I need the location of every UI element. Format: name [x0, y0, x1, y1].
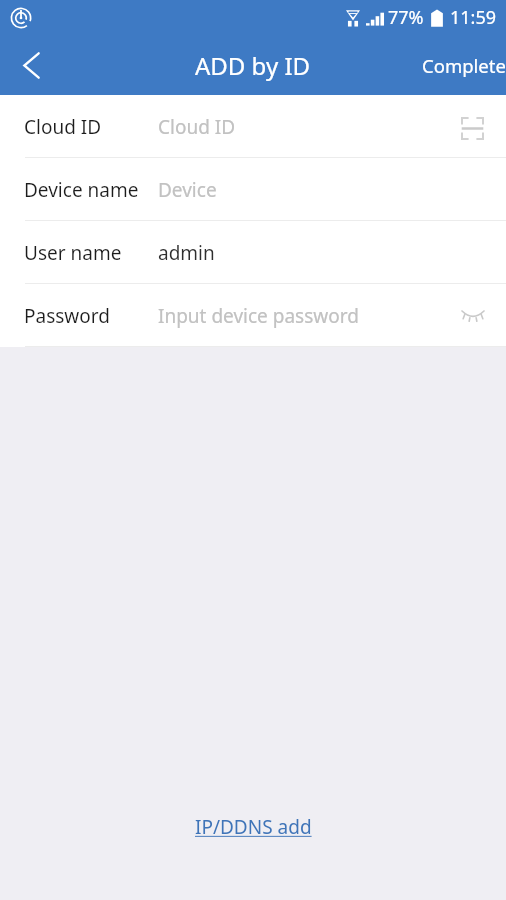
button[interactable]: Password	[0, 284, 506, 346]
button[interactable]: Cloud ID	[0, 95, 506, 157]
staticText: IP/DDNS add	[195, 814, 312, 840]
staticText: 77%	[388, 5, 424, 30]
staticText: Device	[158, 177, 217, 203]
staticText: Password	[24, 303, 110, 329]
button[interactable]: Show password	[439, 286, 506, 346]
staticText: Device name	[24, 177, 139, 203]
staticText: Cloud ID	[158, 114, 236, 140]
button[interactable]: Device name	[0, 158, 506, 220]
button[interactable]: User name	[0, 221, 506, 283]
button[interactable]: Scan QR code	[439, 97, 506, 157]
button[interactable]: Back	[0, 35, 62, 95]
staticText: 11:59	[450, 5, 497, 30]
staticText: ADD by ID	[195, 49, 311, 82]
staticText: admin	[158, 240, 215, 266]
button[interactable]: Complete	[410, 43, 506, 88]
button[interactable]: IP/DDNS add	[181, 806, 326, 848]
staticText: Cloud ID	[24, 114, 102, 140]
staticText: Complete	[422, 53, 506, 78]
staticText: User name	[24, 240, 122, 266]
staticText: Input device password	[158, 303, 359, 329]
